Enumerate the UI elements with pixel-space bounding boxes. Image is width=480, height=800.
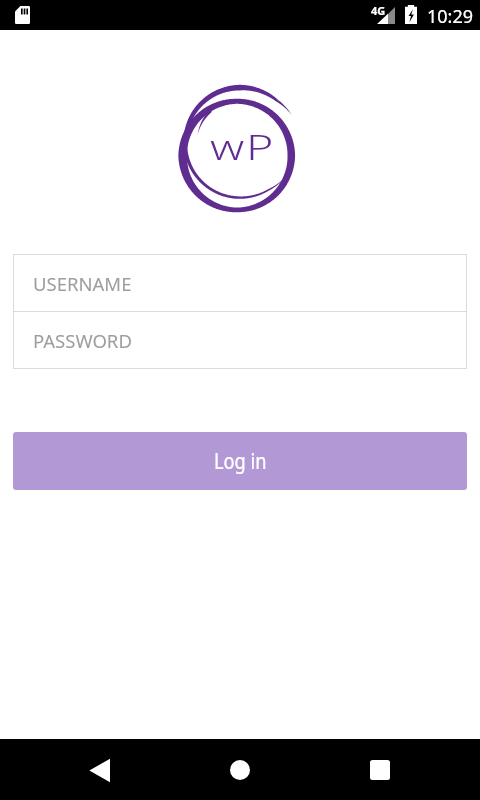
button[interactable]: Back: [80, 750, 120, 790]
button[interactable]: Log in: [13, 432, 467, 490]
staticText: PASSWORD: [33, 328, 132, 353]
staticText: Log in: [214, 447, 267, 476]
staticText: USERNAME: [33, 271, 132, 296]
button[interactable]: Home: [220, 750, 260, 790]
staticText: wP: [210, 123, 276, 171]
staticText: 10:29: [427, 4, 474, 29]
button[interactable]: Recent apps: [360, 750, 400, 790]
button[interactable]: USERNAME: [14, 255, 466, 311]
staticText: 4G: [371, 3, 386, 18]
button[interactable]: PASSWORD: [14, 312, 466, 368]
